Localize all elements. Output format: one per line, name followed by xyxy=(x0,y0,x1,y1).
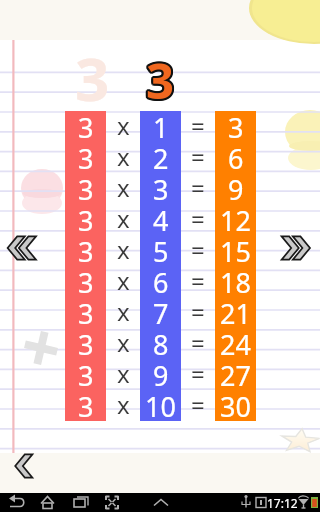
staticText: 3 xyxy=(75,37,110,103)
staticText: = xyxy=(191,202,205,233)
staticText: = xyxy=(191,109,205,140)
button[interactable]: 3 xyxy=(0,111,320,142)
button[interactable]: Next table xyxy=(269,228,315,268)
staticText: x xyxy=(117,264,130,295)
staticText: 3 xyxy=(78,171,94,202)
button[interactable]: 3 xyxy=(0,173,320,204)
staticText: = xyxy=(191,388,205,419)
staticText: x xyxy=(117,109,130,140)
staticText: 3 xyxy=(146,47,175,103)
staticText: 3 xyxy=(145,45,174,101)
staticText: 18 xyxy=(220,264,251,295)
staticText: 3 xyxy=(147,45,176,101)
staticText: 3 xyxy=(78,295,94,326)
staticText: 3 xyxy=(153,171,169,202)
staticText: 3 xyxy=(146,45,175,101)
button[interactable]: 3 xyxy=(0,235,320,266)
button[interactable]: 3 xyxy=(0,359,320,390)
staticText: = xyxy=(191,233,205,264)
staticText: x xyxy=(117,388,130,419)
staticText: 10 xyxy=(145,388,176,419)
staticText: 3 xyxy=(144,47,173,103)
staticText: x xyxy=(117,295,130,326)
staticText: 9 xyxy=(153,357,169,388)
staticText: 3 xyxy=(148,46,177,102)
button[interactable]: 3 xyxy=(0,390,320,421)
button[interactable]: 3 xyxy=(0,142,320,173)
staticText: 3 xyxy=(78,109,94,140)
staticText: 8 xyxy=(153,326,169,357)
staticText: 7 xyxy=(153,295,169,326)
staticText: 3 xyxy=(78,202,94,233)
staticText: 17:12 xyxy=(267,495,298,511)
staticText: = xyxy=(191,295,205,326)
staticText: 3 xyxy=(78,326,94,357)
staticText: = xyxy=(191,264,205,295)
staticText: 3 xyxy=(145,49,174,105)
staticText: 3 xyxy=(78,233,94,264)
staticText: 15 xyxy=(220,233,251,264)
staticText: = xyxy=(191,171,205,202)
staticText: 3 xyxy=(148,48,177,104)
button[interactable]: Back xyxy=(0,447,40,485)
staticText: 3 xyxy=(148,47,177,103)
staticText: 12 xyxy=(220,202,251,233)
staticText: 30 xyxy=(220,388,251,419)
button[interactable]: 3 xyxy=(0,266,320,297)
staticText: 9 xyxy=(228,171,244,202)
staticText: 6 xyxy=(153,264,169,295)
staticText: x xyxy=(117,171,130,202)
staticText: 3 xyxy=(78,264,94,295)
staticText: 4 xyxy=(153,202,169,233)
staticText: x xyxy=(117,357,130,388)
staticText: 3 xyxy=(228,109,244,140)
staticText: 21 xyxy=(220,295,251,326)
staticText: 1 xyxy=(153,109,169,140)
staticText: 3 xyxy=(144,46,173,102)
button[interactable]: 3 xyxy=(0,204,320,235)
staticText: x xyxy=(117,233,130,264)
staticText: = xyxy=(191,326,205,357)
staticText: 3 xyxy=(78,357,94,388)
staticText: 2 xyxy=(153,140,169,171)
staticText: = xyxy=(191,140,205,171)
button[interactable]: 3 xyxy=(0,328,320,359)
staticText: 5 xyxy=(153,233,169,264)
staticText: 3 xyxy=(78,388,94,419)
staticText: x xyxy=(117,202,130,233)
staticText: 3 xyxy=(78,140,94,171)
staticText: 3 xyxy=(146,49,175,105)
staticText: x xyxy=(117,140,130,171)
button[interactable]: Previous table xyxy=(0,228,41,268)
staticText: 3 xyxy=(147,49,176,105)
staticText: 24 xyxy=(220,326,251,357)
staticText: 3 xyxy=(144,48,173,104)
staticText: 6 xyxy=(228,140,244,171)
staticText: 27 xyxy=(220,357,251,388)
button[interactable]: 3 xyxy=(0,297,320,328)
staticText: x xyxy=(117,326,130,357)
staticText: = xyxy=(191,357,205,388)
